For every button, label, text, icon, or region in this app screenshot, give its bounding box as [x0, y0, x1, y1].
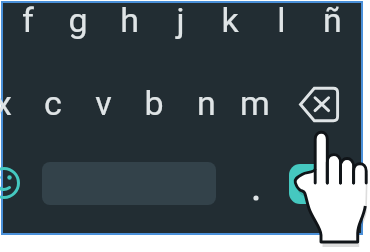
staticText: x	[0, 83, 12, 123]
button[interactable]	[239, 181, 273, 215]
button[interactable]: v	[78, 80, 128, 126]
staticText: k	[221, 0, 239, 40]
button[interactable]: Enter	[289, 164, 343, 204]
button[interactable]: g	[53, 0, 103, 43]
button[interactable]: f	[3, 0, 53, 43]
staticText: l	[277, 0, 286, 40]
button[interactable]: l	[256, 0, 306, 43]
staticText: ñ	[323, 0, 342, 40]
button[interactable]: ñ	[307, 0, 357, 43]
staticText: v	[95, 83, 112, 123]
staticText: m	[240, 83, 270, 123]
button[interactable]: b	[129, 80, 179, 126]
button[interactable]: x	[0, 80, 28, 126]
button[interactable]: h	[104, 0, 154, 43]
staticText: h	[120, 0, 139, 40]
button[interactable]: j	[155, 0, 205, 43]
button[interactable]: Backspace	[293, 80, 345, 126]
button[interactable]: Emoji	[0, 167, 20, 199]
staticText: j	[176, 0, 185, 40]
button[interactable]: m	[230, 80, 280, 126]
button[interactable]: k	[205, 0, 255, 43]
staticText: g	[68, 0, 88, 40]
staticText: n	[197, 83, 216, 123]
button[interactable]: n	[181, 80, 231, 126]
staticText: b	[144, 83, 164, 123]
staticText: f	[22, 0, 34, 40]
button[interactable]: c	[28, 80, 78, 126]
staticText: c	[44, 83, 62, 123]
